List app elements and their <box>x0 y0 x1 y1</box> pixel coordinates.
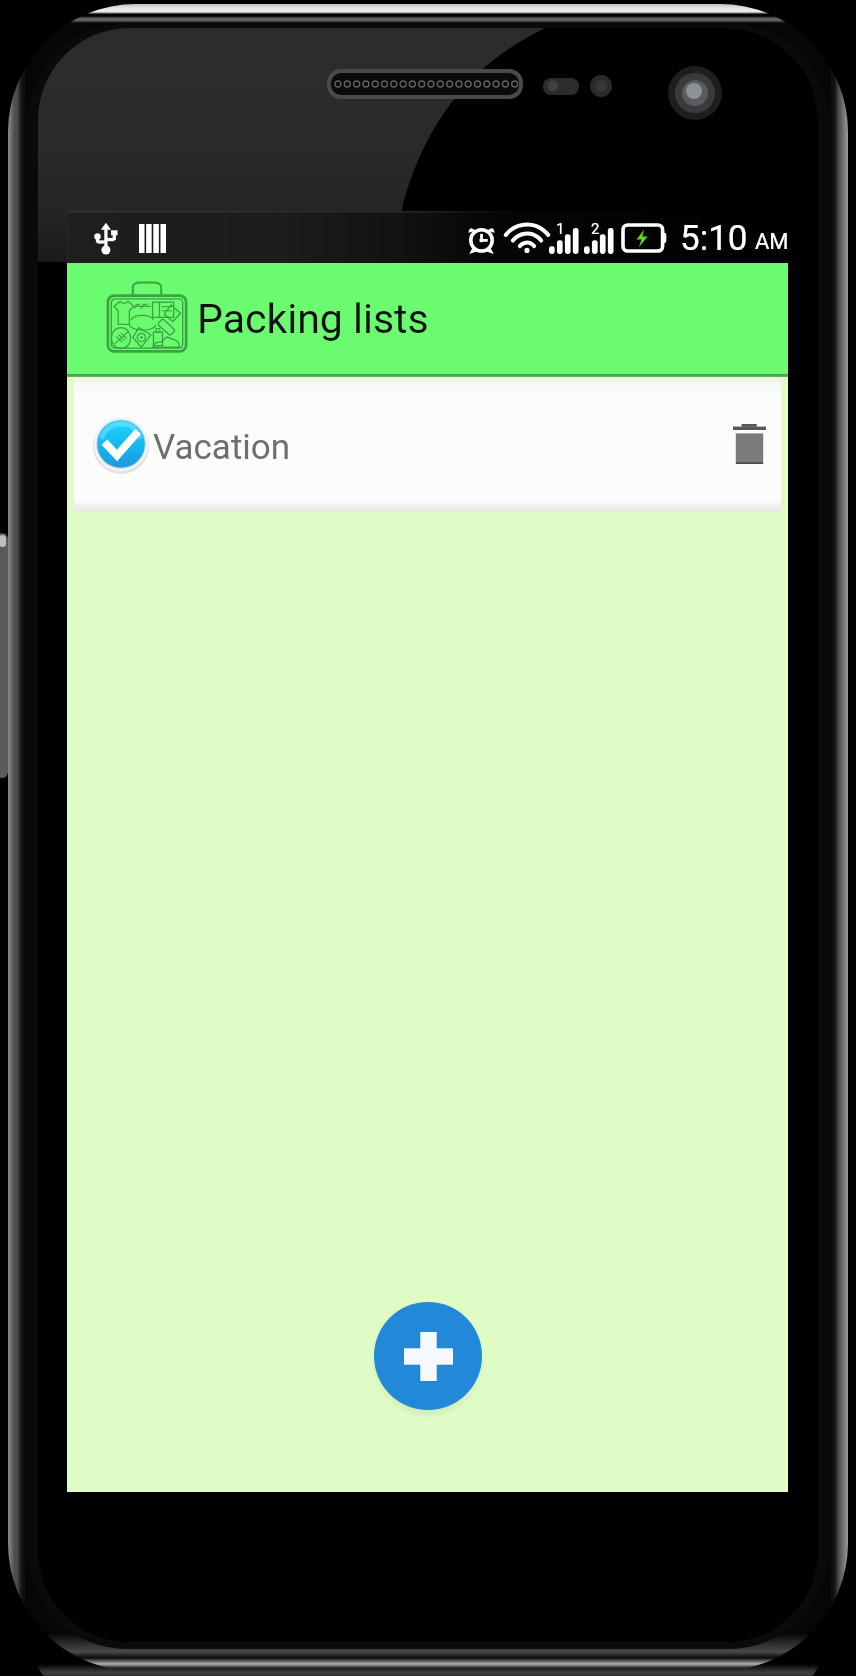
button[interactable]: Delete list <box>713 408 785 480</box>
button[interactable]: Packing lists app icon <box>97 271 197 367</box>
staticText: 2 <box>591 220 600 238</box>
staticText: 1 <box>556 220 565 238</box>
staticText: 5:10 <box>680 218 748 259</box>
staticText: AM <box>755 229 789 255</box>
staticText: Vacation <box>153 427 291 468</box>
button[interactable]: Vacation <box>74 377 781 511</box>
button[interactable]: Add list <box>374 1302 482 1410</box>
staticText: Packing lists <box>197 295 429 343</box>
